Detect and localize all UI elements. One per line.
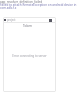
- button[interactable]: project: [3, 17, 56, 22]
- staticText: project: [7, 18, 16, 22]
- staticText: Token: [23, 24, 32, 28]
- staticText: Error connecting to server: [12, 54, 47, 58]
- staticText: com.adb.f.x: [0, 6, 17, 10]
- staticText: Failed to attach RemoteException on andr…: [0, 3, 77, 7]
- staticText: app_resolver_definition_failed: [0, 0, 43, 4]
